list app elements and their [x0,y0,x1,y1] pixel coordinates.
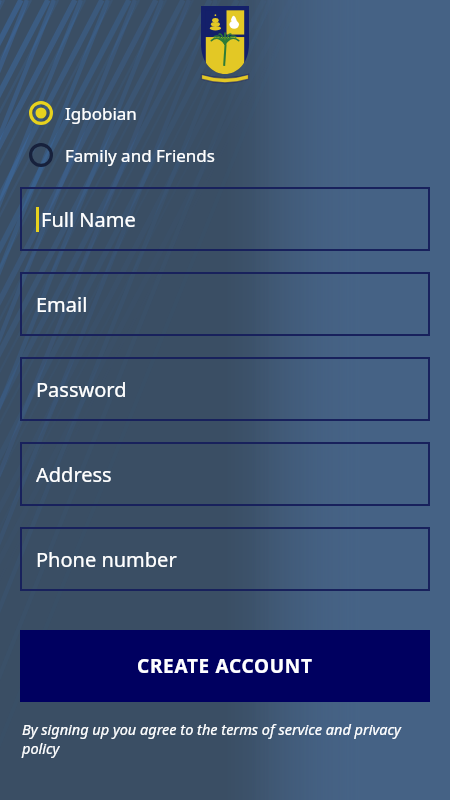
button[interactable]: Password [20,357,430,421]
staticText: CREATE ACCOUNT [137,653,313,679]
staticText: Family and Friends [65,144,215,167]
staticText: Igbobian [65,102,137,125]
staticText: Password [36,376,127,403]
button[interactable]: Igbobian [0,100,450,126]
other: School crest [201,6,249,86]
button[interactable]: Family and Friends [0,142,450,168]
button[interactable]: CREATE ACCOUNT [20,630,430,702]
button[interactable]: Email [20,272,430,336]
button[interactable]: Address [20,442,430,506]
button[interactable]: Phone number [20,527,430,591]
button[interactable]: Full Name [20,187,430,251]
staticText: By signing up you agree to the terms of … [22,719,422,758]
staticText: Email [36,291,88,318]
staticText: Address [36,461,112,488]
staticText: Full Name [41,206,136,233]
staticText: Phone number [36,546,177,573]
